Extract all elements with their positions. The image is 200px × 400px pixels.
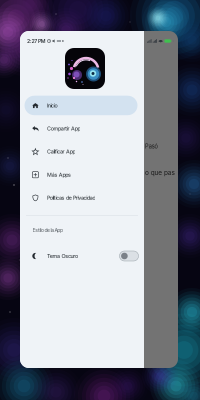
staticText: 2:27 PM	[27, 38, 46, 44]
button[interactable]: Compartir App	[24, 119, 137, 138]
button[interactable]: Inicio	[24, 96, 137, 115]
staticText: Pasó	[145, 143, 157, 150]
button[interactable]: Calificar App	[24, 142, 137, 161]
button[interactable]: Más Apps	[24, 165, 137, 184]
staticText: Estilo de la App	[32, 227, 63, 233]
button[interactable]: Políticas de Privacidad	[24, 188, 137, 208]
staticText: Políticas de Privacidad	[47, 195, 95, 201]
staticText: Calificar App	[47, 148, 75, 155]
staticText: Tema Oscuro	[47, 253, 78, 259]
button[interactable]: Tema Oscuro	[20, 247, 144, 265]
staticText: o que pas	[145, 169, 175, 176]
staticText: Más Apps	[47, 171, 71, 178]
staticText: Compartir App	[47, 125, 80, 132]
staticText: Inicio	[47, 102, 57, 109]
